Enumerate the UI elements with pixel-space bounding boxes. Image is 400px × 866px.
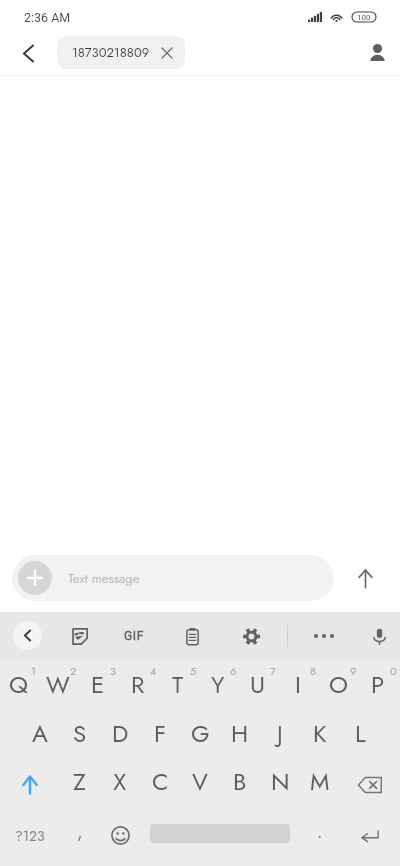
button[interactable]: N bbox=[262, 759, 298, 803]
staticText: Y bbox=[211, 667, 225, 702]
staticText: 6 bbox=[230, 663, 237, 679]
staticText: 3 bbox=[110, 663, 117, 679]
button[interactable]: More options bbox=[308, 620, 340, 652]
staticText: G bbox=[191, 716, 210, 751]
staticText: ?123 bbox=[15, 826, 45, 846]
button[interactable]: 18730218809 bbox=[57, 36, 185, 69]
button[interactable]: Z bbox=[62, 759, 98, 803]
button[interactable]: C bbox=[142, 759, 178, 803]
button[interactable]: W bbox=[42, 661, 78, 707]
button[interactable]: Stickers bbox=[63, 620, 95, 652]
button[interactable]: E bbox=[82, 661, 118, 707]
staticText: 7 bbox=[270, 663, 276, 679]
staticText: T bbox=[172, 667, 184, 702]
staticText: S bbox=[73, 716, 87, 751]
button[interactable]: X bbox=[102, 759, 138, 803]
button[interactable]: Emoji bbox=[102, 807, 138, 864]
button[interactable]: I bbox=[282, 661, 318, 707]
button[interactable]: Q bbox=[2, 661, 38, 707]
button[interactable]: Backspace bbox=[342, 759, 398, 803]
button[interactable]: Settings bbox=[235, 620, 267, 652]
button[interactable]: D bbox=[102, 711, 138, 755]
staticText: GIF bbox=[124, 629, 144, 643]
staticText: 9 bbox=[350, 663, 357, 679]
button[interactable]: Enter bbox=[342, 807, 398, 864]
button[interactable]: O bbox=[322, 661, 358, 707]
staticText: B bbox=[233, 764, 247, 799]
staticText: Q bbox=[9, 667, 28, 702]
staticText: Text message bbox=[68, 569, 140, 588]
staticText: E bbox=[91, 667, 105, 702]
staticText: A bbox=[32, 716, 48, 751]
staticText: 5 bbox=[190, 663, 197, 679]
staticText: X bbox=[113, 764, 127, 799]
button[interactable]: M bbox=[302, 759, 338, 803]
button[interactable]: Y bbox=[202, 661, 238, 707]
button[interactable]: Shift bbox=[2, 759, 58, 803]
staticText: , bbox=[77, 819, 83, 845]
button[interactable]: Back bbox=[9, 34, 47, 72]
staticText: P bbox=[371, 667, 385, 702]
button[interactable]: A bbox=[22, 711, 58, 755]
button[interactable]: B bbox=[222, 759, 258, 803]
staticText: R bbox=[131, 667, 145, 702]
button[interactable]: Collapse toolbar bbox=[13, 621, 42, 650]
button[interactable]: ?123 bbox=[2, 807, 58, 864]
staticText: . bbox=[317, 819, 323, 845]
staticText: 2 bbox=[70, 663, 77, 679]
staticText: 100 bbox=[357, 13, 371, 22]
button[interactable]: H bbox=[222, 711, 258, 755]
staticText: V bbox=[192, 764, 208, 799]
staticText: M bbox=[310, 764, 330, 799]
button[interactable]: Text message bbox=[12, 555, 334, 601]
staticText: 4 bbox=[150, 663, 157, 679]
button[interactable]: Clipboard bbox=[176, 620, 208, 652]
staticText: J bbox=[277, 716, 283, 751]
button[interactable]: S bbox=[62, 711, 98, 755]
staticText: H bbox=[231, 716, 249, 751]
button[interactable]: Space bbox=[140, 805, 300, 866]
button[interactable]: K bbox=[302, 711, 338, 755]
staticText: C bbox=[152, 764, 169, 799]
staticText: 0 bbox=[390, 663, 397, 679]
staticText: 18730218809 bbox=[72, 43, 150, 62]
button[interactable]: Contact details bbox=[358, 34, 396, 72]
button[interactable]: . bbox=[302, 807, 338, 864]
staticText: 8 bbox=[310, 663, 317, 679]
button[interactable]: GIF bbox=[118, 620, 150, 652]
button[interactable]: , bbox=[62, 807, 98, 864]
staticText: O bbox=[329, 667, 348, 702]
button[interactable]: F bbox=[142, 711, 178, 755]
button[interactable]: L bbox=[342, 711, 378, 755]
button[interactable]: Send bbox=[342, 555, 388, 601]
staticText: D bbox=[112, 716, 129, 751]
button[interactable]: T bbox=[162, 661, 198, 707]
staticText: L bbox=[355, 716, 366, 751]
button[interactable]: Voice input bbox=[363, 620, 395, 652]
button[interactable]: J bbox=[262, 711, 298, 755]
staticText: Z bbox=[73, 764, 87, 799]
button[interactable]: V bbox=[182, 759, 218, 803]
staticText: I bbox=[295, 667, 301, 702]
staticText: 1 bbox=[31, 663, 36, 679]
button[interactable]: U bbox=[242, 661, 278, 707]
button[interactable]: G bbox=[182, 711, 218, 755]
staticText: U bbox=[250, 667, 266, 702]
staticText: K bbox=[313, 716, 327, 751]
staticText: 2:36 AM bbox=[24, 10, 71, 25]
staticText: F bbox=[154, 716, 166, 751]
staticText: W bbox=[46, 667, 70, 702]
button[interactable]: P bbox=[362, 661, 398, 707]
button[interactable]: R bbox=[122, 661, 158, 707]
staticText: N bbox=[271, 764, 290, 799]
